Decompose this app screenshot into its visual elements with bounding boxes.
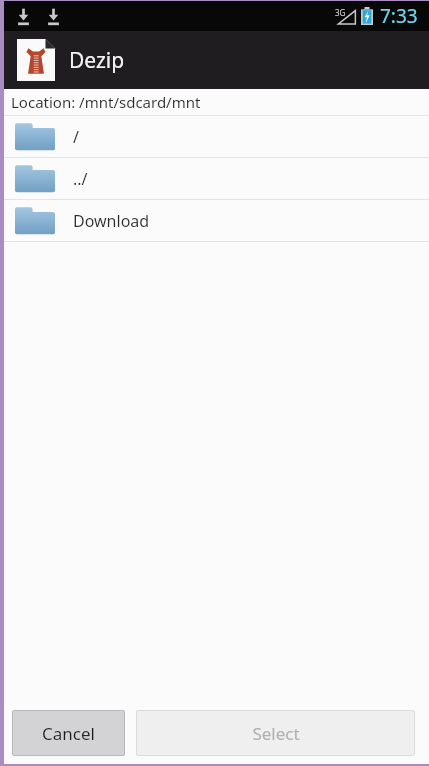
staticText: ../ bbox=[73, 168, 88, 190]
button[interactable]: ../ bbox=[4, 158, 429, 199]
staticText: Dezip bbox=[69, 46, 125, 75]
staticText: / bbox=[73, 126, 79, 148]
button[interactable]: Select bbox=[136, 710, 415, 756]
staticText: Select bbox=[252, 722, 300, 745]
button[interactable]: Download bbox=[4, 200, 429, 241]
staticText: Location: /mnt/sdcard/mnt bbox=[11, 92, 201, 112]
other: Dezip app icon bbox=[17, 39, 55, 81]
staticText: Download bbox=[73, 210, 150, 232]
staticText: 3G bbox=[335, 7, 346, 18]
staticText: 7:33 bbox=[380, 3, 418, 29]
staticText: Cancel bbox=[42, 722, 95, 745]
button[interactable]: Cancel bbox=[12, 710, 125, 756]
button[interactable]: / bbox=[4, 116, 429, 157]
